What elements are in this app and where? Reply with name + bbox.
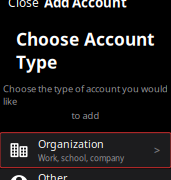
staticText: Choose the type of account you would lik… <box>3 82 168 107</box>
staticText: Choose Account Type <box>16 27 155 73</box>
staticText: Add Account <box>44 0 127 11</box>
staticText: Close <box>8 0 39 10</box>
staticText: to add <box>71 109 99 122</box>
button[interactable]: Organization <box>0 133 171 168</box>
button[interactable]: Close <box>0 0 47 14</box>
staticText: > <box>154 143 160 157</box>
staticText: Work, school, company <box>38 153 124 163</box>
staticText: Organization <box>38 137 104 151</box>
staticText: Other <box>38 171 67 180</box>
button[interactable]: Other <box>0 169 171 180</box>
